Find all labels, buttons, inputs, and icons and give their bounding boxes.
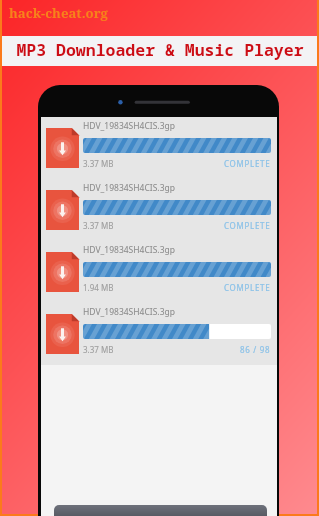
staticText: COMPLETE xyxy=(224,158,271,169)
staticText: COMPLETE xyxy=(224,282,271,293)
staticText: HDV_19834SH4CIS.3gp xyxy=(83,182,175,194)
staticText: HDV_19834SH4CIS.3gp xyxy=(83,244,175,256)
staticText: hack-cheat.org xyxy=(9,4,108,22)
staticText: 3.37 MB xyxy=(83,158,114,169)
button[interactable]: HDV_19834SH4CIS.3gp xyxy=(41,241,277,303)
staticText: HDV_19834SH4CIS.3gp xyxy=(83,120,175,132)
staticText: 1.94 MB xyxy=(83,282,114,293)
staticText: HDV_19834SH4CIS.3gp xyxy=(83,306,175,318)
button[interactable]: HDV_19834SH4CIS.3gp xyxy=(41,303,277,365)
staticText: 3.37 MB xyxy=(83,220,114,231)
staticText: 86 / 98 xyxy=(240,344,271,355)
staticText: MP3 Downloader & Music Player xyxy=(16,38,304,60)
staticText: 3.37 MB xyxy=(83,344,114,355)
button[interactable]: HDV_19834SH4CIS.3gp xyxy=(41,179,277,241)
staticText: COMPLETE xyxy=(224,220,271,231)
button[interactable]: HDV_19834SH4CIS.3gp xyxy=(41,117,277,179)
